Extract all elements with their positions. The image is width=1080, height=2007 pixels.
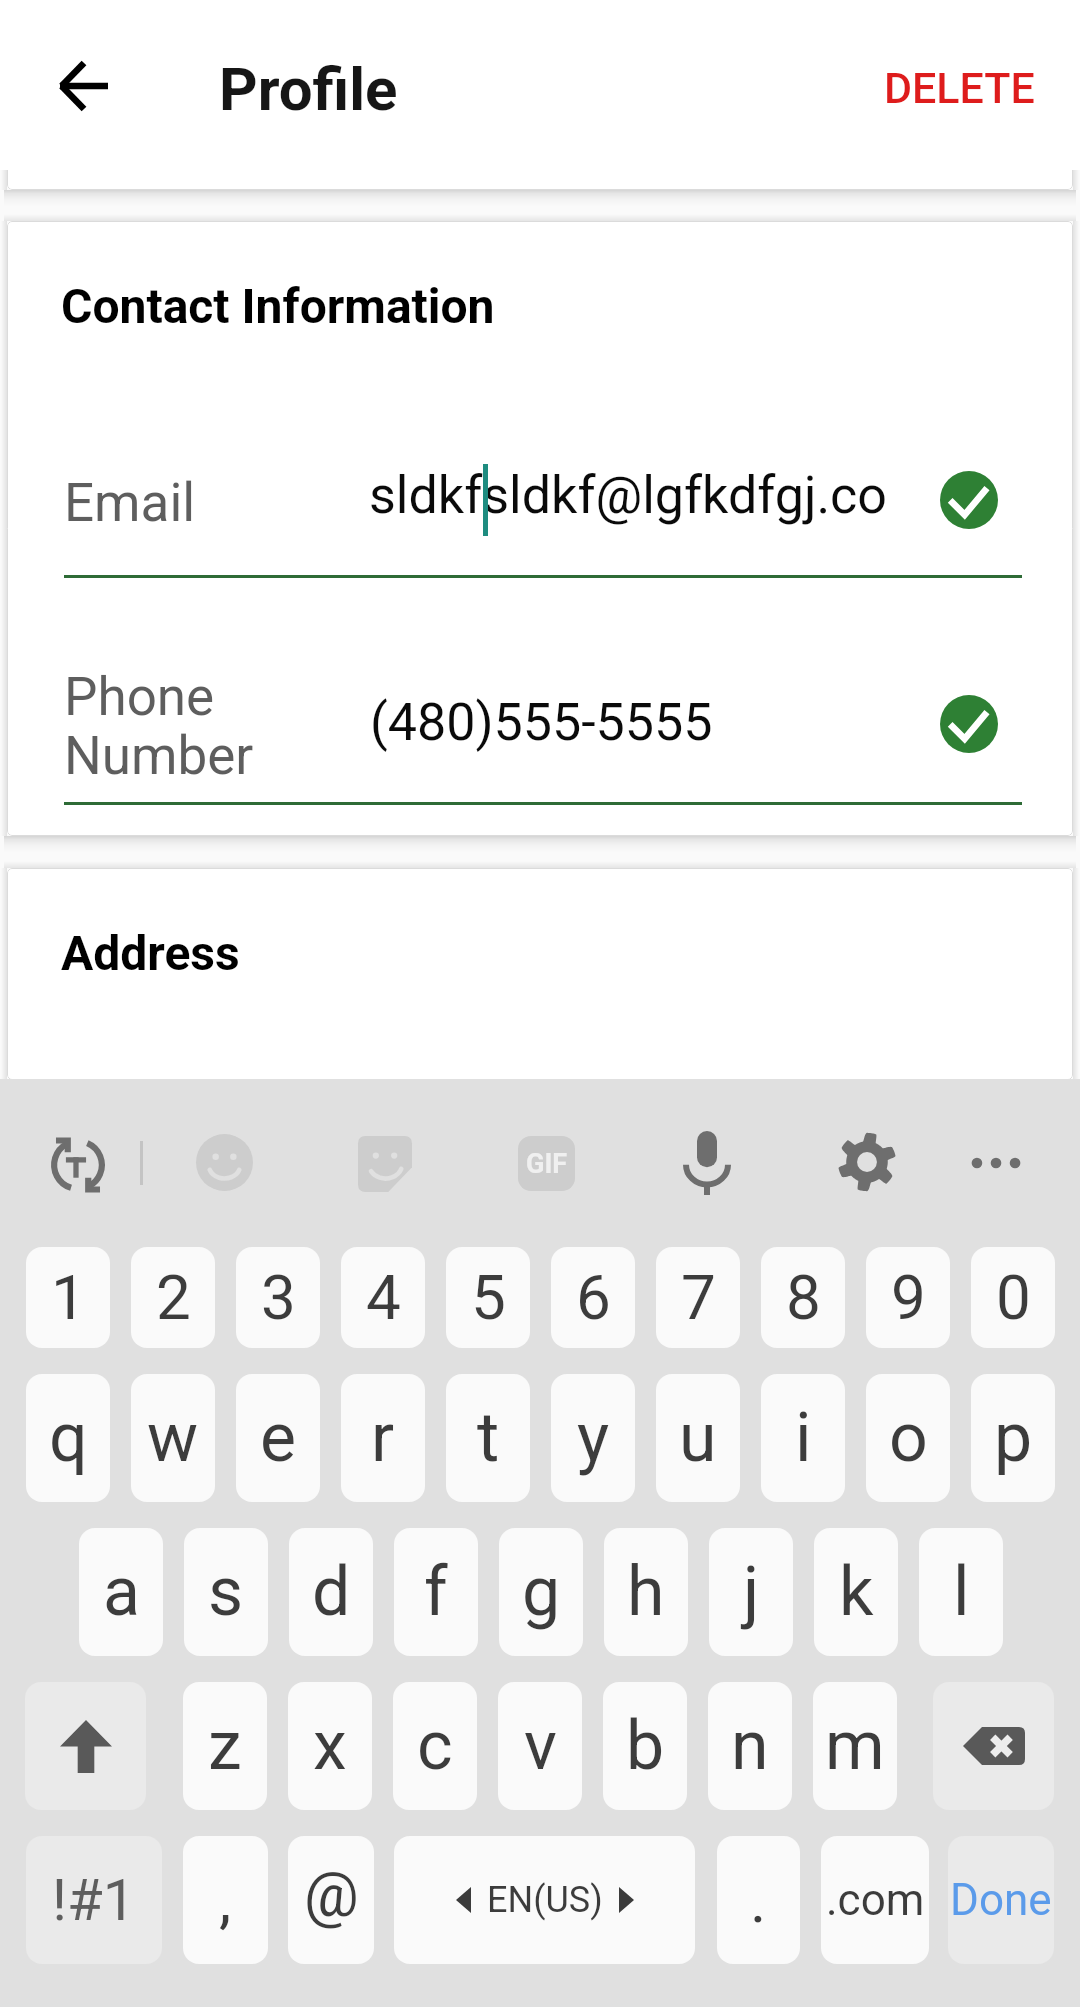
staticText: Email: [64, 472, 196, 534]
button[interactable]: EN(US): [394, 1836, 695, 1964]
button[interactable]: Done: [948, 1836, 1054, 1964]
staticText: e: [260, 1398, 297, 1478]
button[interactable]: Phone Number field: [64, 661, 1022, 805]
staticText: f: [424, 1552, 448, 1632]
staticText: w: [147, 1398, 199, 1478]
button[interactable]: n: [708, 1682, 792, 1810]
button[interactable]: 6: [551, 1247, 635, 1348]
staticText: EN(US): [487, 1879, 603, 1921]
staticText: k: [839, 1552, 874, 1632]
button[interactable]: Shift: [25, 1682, 146, 1810]
button[interactable]: d: [289, 1528, 373, 1656]
button[interactable]: p: [971, 1374, 1055, 1502]
button[interactable]: Backspace: [933, 1682, 1054, 1810]
button[interactable]: Stickers: [358, 1136, 412, 1192]
button[interactable]: More options: [968, 1131, 1024, 1195]
button[interactable]: 9: [866, 1247, 950, 1348]
staticText: j: [743, 1552, 760, 1632]
staticText: 1: [51, 1261, 86, 1334]
staticText: Phone Number: [64, 666, 254, 787]
button[interactable]: o: [866, 1374, 950, 1502]
staticText: 4: [366, 1261, 401, 1334]
button[interactable]: DELETE: [859, 39, 1059, 137]
button[interactable]: 5: [446, 1247, 530, 1348]
button[interactable]: v: [498, 1682, 582, 1810]
button[interactable]: e: [236, 1374, 320, 1502]
button[interactable]: Back: [38, 40, 130, 132]
button[interactable]: z: [183, 1682, 267, 1810]
staticText: h: [627, 1552, 665, 1632]
staticText: DELETE: [884, 63, 1035, 113]
button[interactable]: a: [79, 1528, 163, 1656]
button[interactable]: .com: [821, 1836, 929, 1964]
button[interactable]: k: [814, 1528, 898, 1656]
staticText: 9: [891, 1261, 926, 1334]
staticText: t: [477, 1398, 500, 1478]
staticText: a: [103, 1552, 140, 1632]
button[interactable]: m: [813, 1682, 897, 1810]
staticText: Contact Information: [61, 278, 495, 334]
staticText: i: [795, 1398, 812, 1478]
button[interactable]: 3: [236, 1247, 320, 1348]
button[interactable]: h: [604, 1528, 688, 1656]
button[interactable]: b: [603, 1682, 687, 1810]
button[interactable]: @: [288, 1836, 374, 1964]
staticText: 7: [681, 1261, 716, 1334]
staticText: l: [953, 1552, 970, 1632]
staticText: !#1: [52, 1866, 136, 1934]
staticText: m: [825, 1706, 885, 1786]
button[interactable]: r: [341, 1374, 425, 1502]
button[interactable]: s: [184, 1528, 268, 1656]
button[interactable]: c: [393, 1682, 477, 1810]
button[interactable]: 8: [761, 1247, 845, 1348]
staticText: @: [304, 1859, 359, 1930]
button[interactable]: 4: [341, 1247, 425, 1348]
button[interactable]: t: [446, 1374, 530, 1502]
button[interactable]: g: [499, 1528, 583, 1656]
staticText: 6: [576, 1261, 611, 1334]
staticText: 5: [471, 1261, 506, 1334]
staticText: s: [208, 1552, 244, 1632]
button[interactable]: Translate: [47, 1134, 109, 1196]
staticText: u: [679, 1398, 717, 1478]
staticText: .: [750, 1864, 767, 1937]
button[interactable]: l: [919, 1528, 1003, 1656]
button[interactable]: f: [394, 1528, 478, 1656]
staticText: GIF: [526, 1148, 568, 1180]
staticText: b: [626, 1706, 665, 1786]
button[interactable]: x: [288, 1682, 372, 1810]
staticText: n: [731, 1706, 769, 1786]
staticText: q: [49, 1398, 88, 1478]
staticText: z: [208, 1706, 242, 1786]
staticText: y: [577, 1398, 610, 1478]
button[interactable]: Emoji: [196, 1134, 253, 1191]
button[interactable]: 7: [656, 1247, 740, 1348]
staticText: (480)555-5555: [370, 692, 713, 753]
button[interactable]: y: [551, 1374, 635, 1502]
button[interactable]: j: [709, 1528, 793, 1656]
button[interactable]: i: [761, 1374, 845, 1502]
button[interactable]: .: [717, 1836, 800, 1964]
button[interactable]: Voice input: [682, 1129, 732, 1195]
button[interactable]: u: [656, 1374, 740, 1502]
staticText: 8: [786, 1261, 821, 1334]
button[interactable]: !#1: [26, 1836, 162, 1964]
button[interactable]: Email field: [64, 436, 1022, 578]
staticText: 0: [996, 1261, 1031, 1334]
staticText: d: [312, 1552, 351, 1632]
button[interactable]: ,: [183, 1836, 268, 1964]
staticText: p: [994, 1398, 1033, 1478]
staticText: g: [522, 1552, 561, 1632]
button[interactable]: w: [131, 1374, 215, 1502]
button[interactable]: GIF: [518, 1136, 575, 1191]
button[interactable]: 2: [131, 1247, 215, 1348]
staticText: .com: [826, 1874, 925, 1926]
staticText: x: [313, 1706, 347, 1786]
button[interactable]: Settings: [836, 1131, 898, 1193]
staticText: 3: [261, 1261, 296, 1334]
button[interactable]: q: [26, 1374, 110, 1502]
button[interactable]: 0: [971, 1247, 1055, 1348]
staticText: Address: [61, 925, 240, 981]
button[interactable]: 1: [26, 1247, 110, 1348]
staticText: r: [371, 1398, 395, 1478]
